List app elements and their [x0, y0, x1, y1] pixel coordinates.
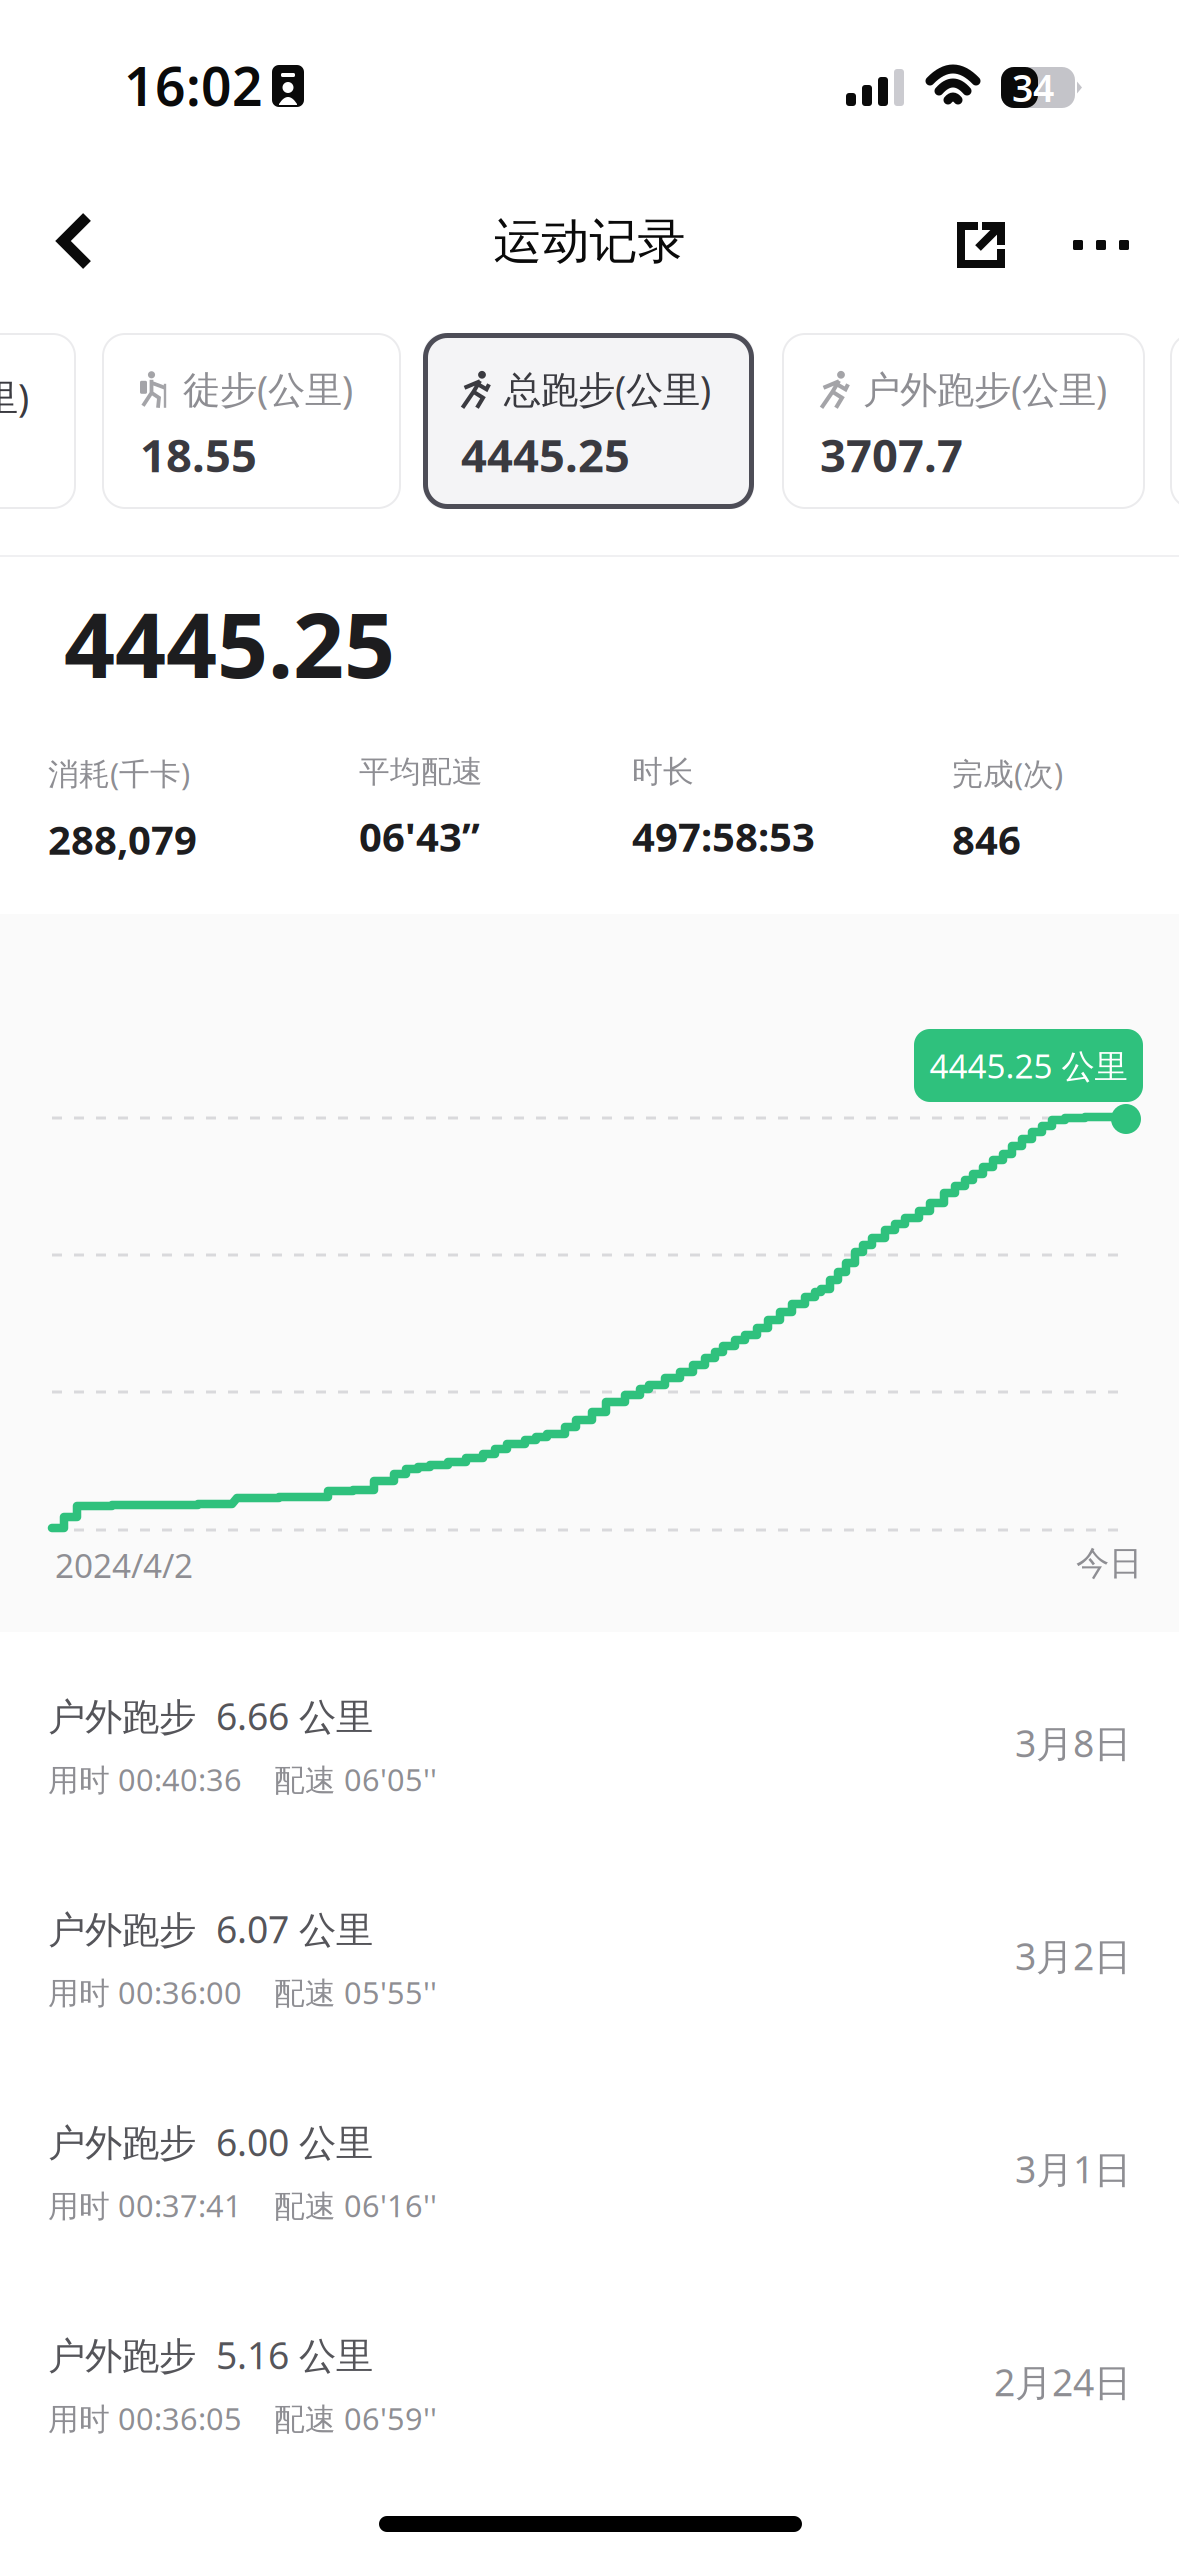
button[interactable]: More — [1053, 218, 1149, 272]
button[interactable]: 户外跑步 6.07 公里 — [0, 1880, 1179, 2093]
staticText: 288,079 — [48, 813, 197, 866]
button[interactable]: 里) — [0, 333, 76, 509]
staticText: 今日 — [1076, 1543, 1142, 1584]
staticText: 总跑步(公里) — [504, 364, 711, 414]
staticText: 里) — [0, 372, 29, 422]
staticText: 完成(次) — [952, 753, 1063, 794]
staticText: 18.55 — [140, 425, 257, 485]
staticText: 06'43” — [359, 810, 480, 863]
staticText: 户外跑步 6.00 公里 — [48, 2117, 373, 2167]
button[interactable]: 总跑步(公里) — [423, 333, 754, 509]
staticText: 16:02 — [124, 50, 263, 121]
button[interactable]: 户外跑步 6.66 公里 — [0, 1667, 1179, 1880]
staticText: 846 — [952, 813, 1021, 866]
staticText: 3月1日 — [1015, 2144, 1131, 2194]
staticText: 4445.25 公里 — [929, 1043, 1127, 1088]
staticText: 2月24日 — [994, 2357, 1131, 2407]
staticText: 用时 00:36:00 配速 05'55'' — [48, 1972, 437, 2013]
button[interactable]: 户外跑步 6.00 公里 — [0, 2093, 1179, 2306]
staticText: 用时 00:36:05 配速 06'59'' — [48, 2398, 437, 2439]
staticText: 户外跑步 6.66 公里 — [48, 1691, 373, 1741]
staticText: 3月8日 — [1015, 1718, 1131, 1768]
staticText: 户外跑步 6.07 公里 — [48, 1904, 373, 1954]
staticText: 497:58:53 — [632, 810, 815, 863]
button[interactable]: 户外跑步 5.16 公里 — [0, 2306, 1179, 2519]
staticText: 用时 00:40:36 配速 06'05'' — [48, 1759, 437, 1800]
staticText: 4445.25 — [64, 584, 395, 703]
staticText: 3707.7 — [820, 425, 963, 485]
staticText: 用时 00:37:41 配速 06'16'' — [48, 2185, 437, 2226]
button[interactable]: 户外跑步(公里) — [782, 333, 1145, 509]
button[interactable]: 徒步(公里) — [102, 333, 401, 509]
staticText: 户外跑步(公里) — [863, 364, 1107, 414]
button[interactable]: Back — [30, 190, 120, 292]
staticText: 户外跑步 5.16 公里 — [48, 2330, 373, 2380]
staticText: 4445.25 — [461, 425, 630, 485]
staticText: 34 — [1012, 63, 1054, 112]
staticText: 消耗(千卡) — [48, 753, 190, 794]
staticText: 2024/4/2 — [55, 1543, 193, 1587]
staticText: 时长 — [632, 753, 694, 791]
staticText: 徒步(公里) — [183, 364, 353, 414]
button[interactable]: 健 — [1170, 333, 1179, 509]
staticText: 运动记录 — [493, 212, 685, 271]
staticText: 平均配速 — [359, 753, 483, 791]
staticText: 3月2日 — [1015, 1931, 1131, 1981]
button[interactable]: Share — [937, 202, 1025, 288]
